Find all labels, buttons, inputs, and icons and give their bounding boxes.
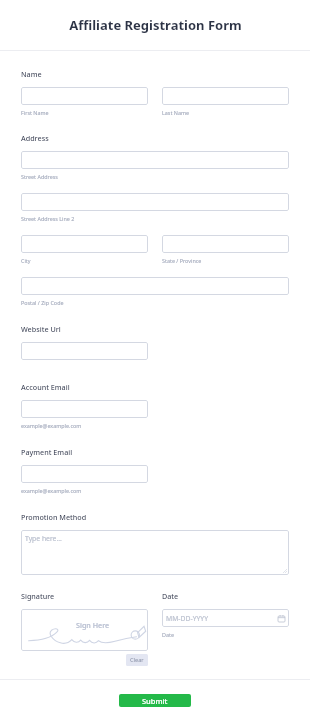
- button[interactable]: [162, 235, 289, 253]
- staticText: Payment Email: [21, 447, 73, 457]
- staticText: Clear: [130, 656, 144, 664]
- button[interactable]: [21, 465, 148, 483]
- staticText: example@example.com: [21, 422, 82, 429]
- staticText: Name: [21, 69, 42, 79]
- button[interactable]: [21, 235, 148, 253]
- staticText: Date: [162, 591, 179, 601]
- staticText: Type here...: [25, 534, 62, 543]
- button[interactable]: Signature pad: [21, 609, 148, 651]
- button[interactable]: [21, 342, 148, 360]
- staticText: Street Address: [21, 173, 58, 180]
- button[interactable]: [21, 193, 289, 211]
- staticText: Promotion Method: [21, 512, 87, 522]
- button[interactable]: Submit: [119, 694, 191, 707]
- staticText: example@example.com: [21, 487, 82, 494]
- button[interactable]: [162, 87, 289, 105]
- staticText: Sign Here: [76, 620, 110, 630]
- staticText: Signature: [21, 591, 55, 601]
- staticText: Affiliate Registration Form: [69, 16, 242, 34]
- staticText: Address: [21, 133, 49, 143]
- staticText: State / Province: [162, 257, 202, 264]
- button[interactable]: [21, 87, 148, 105]
- staticText: Date: [162, 631, 174, 638]
- button[interactable]: MM-DD-YYYY: [162, 609, 289, 627]
- staticText: Postal / Zip Code: [21, 299, 64, 306]
- staticText: MM-DD-YYYY: [166, 614, 278, 623]
- staticText: City: [21, 257, 31, 264]
- staticText: Street Address Line 2: [21, 215, 75, 222]
- button[interactable]: Clear: [126, 654, 148, 666]
- button[interactable]: [21, 277, 289, 295]
- staticText: Account Email: [21, 382, 70, 392]
- button[interactable]: [21, 400, 148, 418]
- staticText: First Name: [21, 109, 49, 116]
- staticText: Last Name: [162, 109, 189, 116]
- staticText: Website Url: [21, 324, 61, 334]
- button[interactable]: [21, 151, 289, 169]
- staticText: Submit: [142, 696, 168, 706]
- button[interactable]: Type here...: [21, 530, 289, 575]
